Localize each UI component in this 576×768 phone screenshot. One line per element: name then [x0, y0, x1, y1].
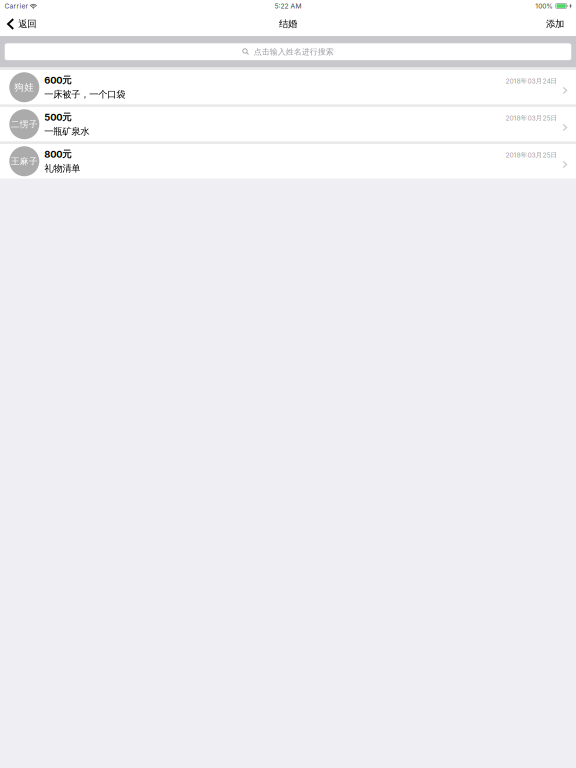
staticText: 一床被子，一个口袋 [44, 88, 125, 100]
staticText: 2018年03月24日 [505, 77, 557, 85]
staticText: 王麻子 [11, 156, 38, 167]
button[interactable]: 狗娃 [0, 70, 576, 104]
button[interactable]: 添加 [538, 12, 576, 36]
staticText: 添加 [546, 18, 564, 30]
staticText: 狗娃 [14, 81, 34, 93]
staticText: Carrier [4, 2, 28, 10]
staticText: 礼物清单 [44, 162, 80, 174]
staticText: 100% [535, 2, 553, 10]
button[interactable]: 王麻子 [0, 144, 576, 178]
staticText: 800元 [44, 148, 71, 160]
staticText: 2018年03月25日 [505, 151, 557, 159]
staticText: 600元 [44, 74, 71, 86]
staticText: 500元 [44, 111, 71, 123]
staticText: 点击输入姓名进行搜索 [254, 47, 334, 57]
staticText: 5:22 AM [274, 2, 301, 10]
staticText: 一瓶矿泉水 [44, 125, 89, 137]
staticText: 2018年03月25日 [505, 114, 557, 122]
staticText: 结婚 [279, 18, 297, 30]
button[interactable]: 点击输入姓名进行搜索 [0, 36, 576, 67]
button[interactable]: 返回 [0, 12, 42, 36]
staticText: 二愣子 [11, 119, 38, 130]
button[interactable]: 二愣子 [0, 107, 576, 141]
staticText: 返回 [18, 18, 36, 30]
